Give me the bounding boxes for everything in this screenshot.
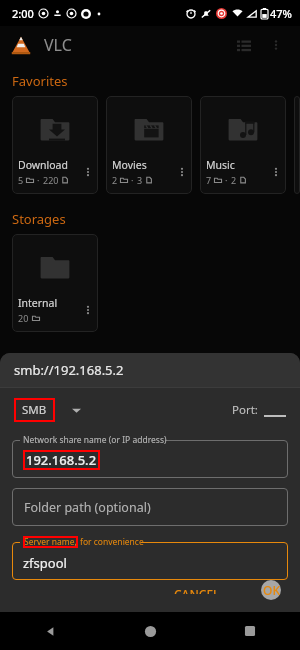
button[interactable]: Back bbox=[0, 612, 100, 650]
staticText: Folder path (optional) bbox=[24, 499, 151, 516]
staticText: 2:00 bbox=[12, 6, 34, 21]
button[interactable]: Item options bbox=[174, 164, 190, 180]
button[interactable]: Home bbox=[100, 612, 200, 650]
button[interactable]: Internal memory bbox=[12, 234, 98, 332]
button[interactable]: Item options bbox=[80, 164, 96, 180]
staticText: Network share name (or IP address) bbox=[23, 434, 167, 446]
staticText: · bbox=[131, 174, 134, 186]
staticText: zfspool bbox=[23, 554, 67, 572]
button[interactable] bbox=[12, 440, 288, 478]
staticText: Storages bbox=[12, 210, 66, 228]
staticText: 47% bbox=[270, 6, 292, 21]
staticText: 2 bbox=[231, 174, 237, 186]
staticText: Server name, bbox=[24, 536, 77, 548]
staticText: CANCEL bbox=[174, 586, 220, 594]
button[interactable] bbox=[294, 96, 300, 194]
staticText: 220 bbox=[43, 174, 59, 186]
button[interactable] bbox=[264, 403, 286, 417]
staticText: 3 bbox=[137, 174, 143, 186]
button[interactable]: Recent apps bbox=[200, 612, 300, 650]
staticText: for convenience bbox=[80, 536, 144, 548]
button[interactable]: Item options bbox=[80, 302, 96, 318]
staticText: Port: bbox=[232, 402, 258, 418]
button[interactable]: CANCEL bbox=[164, 580, 230, 600]
button[interactable]: Expand protocol bbox=[67, 401, 85, 419]
button[interactable]: Music bbox=[200, 96, 286, 194]
button[interactable]: Item options bbox=[268, 164, 284, 180]
staticText: · bbox=[225, 174, 228, 186]
button[interactable] bbox=[12, 542, 288, 580]
staticText: Movies bbox=[112, 158, 147, 172]
staticText: 192.168.5.2 bbox=[26, 451, 97, 469]
button[interactable]: SMB bbox=[22, 402, 47, 418]
staticText: 2 bbox=[112, 174, 118, 186]
staticText: Download bbox=[18, 158, 68, 172]
staticText: VLC bbox=[44, 34, 72, 56]
staticText: SMB bbox=[22, 402, 47, 418]
button[interactable]: More options bbox=[262, 31, 290, 59]
button[interactable]: List view bbox=[230, 31, 258, 59]
button[interactable]: Movies bbox=[106, 96, 192, 194]
staticText: 20 bbox=[18, 312, 29, 324]
staticText: smb://192.168.5.2 bbox=[14, 361, 124, 379]
button[interactable]: Download bbox=[12, 96, 98, 194]
staticText: 7 bbox=[206, 174, 212, 186]
staticText: 5 bbox=[18, 174, 24, 186]
staticText: · bbox=[37, 174, 40, 186]
staticText: OK bbox=[263, 582, 280, 598]
staticText: Favorites bbox=[12, 72, 68, 90]
button[interactable]: Folder path (optional) bbox=[12, 488, 288, 526]
button[interactable]: OK bbox=[260, 580, 282, 600]
staticText: Internal memory bbox=[18, 296, 80, 310]
staticText: Music bbox=[206, 158, 235, 172]
